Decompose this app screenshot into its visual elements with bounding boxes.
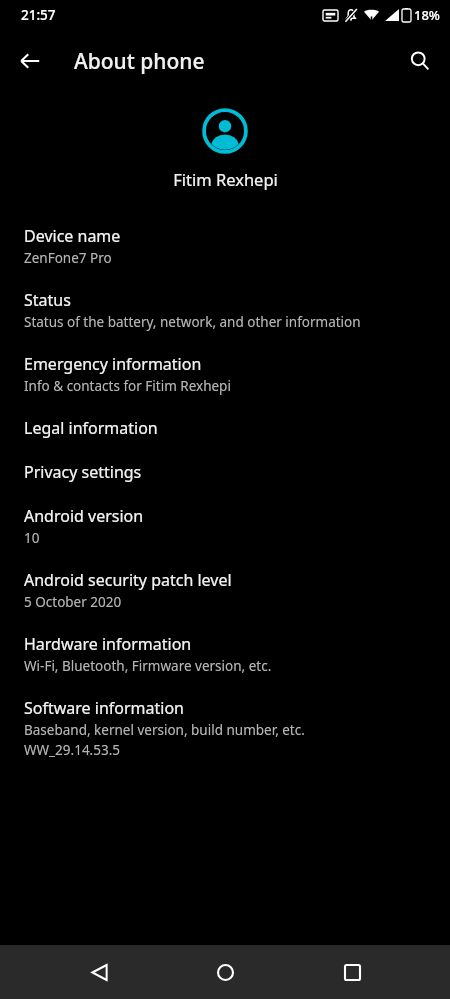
staticText: 21:57 — [21, 6, 56, 24]
button[interactable]: Android version — [0, 494, 450, 558]
button[interactable]: Software information — [0, 686, 450, 770]
staticText: Hardware information — [24, 633, 192, 655]
staticText: WW_29.14.53.5 — [24, 741, 121, 759]
button[interactable]: Home — [197, 945, 253, 999]
staticText: Software information — [24, 697, 184, 719]
staticText: 10 — [24, 529, 40, 547]
staticText: Status — [24, 289, 71, 311]
staticText: Android security patch level — [24, 569, 232, 591]
button[interactable]: Search — [398, 39, 442, 83]
staticText: 5 October 2020 — [24, 593, 122, 611]
button[interactable]: Device name — [0, 214, 450, 278]
staticText: Legal information — [24, 417, 158, 439]
staticText: 18% — [414, 6, 440, 24]
staticText: Android version — [24, 505, 144, 527]
button[interactable]: Privacy settings — [0, 450, 450, 494]
staticText: Status of the battery, network, and othe… — [24, 313, 361, 331]
button[interactable]: Status — [0, 278, 450, 342]
staticText: Info & contacts for Fitim Rexhepi — [24, 377, 231, 395]
staticText: Emergency information — [24, 353, 202, 375]
button[interactable]: Back — [8, 39, 52, 83]
button[interactable]: Hardware information — [0, 622, 450, 686]
button[interactable]: Emergency information — [0, 342, 450, 406]
staticText: Wi-Fi, Bluetooth, Firmware version, etc. — [24, 657, 272, 675]
staticText: Device name — [24, 225, 121, 247]
button[interactable]: Android security patch level — [0, 558, 450, 622]
staticText: ZenFone7 Pro — [24, 249, 112, 267]
button[interactable]: Recent apps — [324, 945, 380, 999]
staticText: Privacy settings — [24, 461, 142, 483]
button[interactable]: Legal information — [0, 406, 450, 450]
staticText: Fitim Rexhepi — [173, 168, 278, 190]
staticText: About phone — [74, 47, 205, 76]
staticText: Baseband, kernel version, build number, … — [24, 721, 305, 739]
button[interactable]: Back — [71, 945, 127, 999]
